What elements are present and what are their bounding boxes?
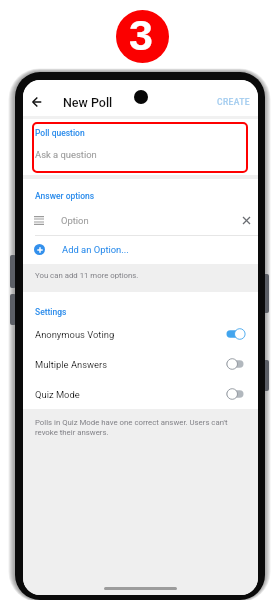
staticText: Option <box>61 215 89 226</box>
staticText: Anonymous Voting <box>35 329 115 340</box>
staticText: 3 <box>129 11 153 59</box>
button[interactable]: Back <box>23 88 51 116</box>
button[interactable]: CREATE <box>209 88 258 116</box>
button[interactable]: Off <box>226 387 246 401</box>
staticText: Answer options <box>35 191 95 201</box>
button[interactable]: Off <box>226 357 246 371</box>
staticText: Poll question <box>35 128 85 138</box>
button[interactable]: Poll question <box>23 119 258 175</box>
staticText: Settings <box>35 307 67 317</box>
button[interactable]: Anonymous Voting <box>23 319 258 349</box>
staticText: Multiple Answers <box>35 359 108 370</box>
button[interactable]: Quiz Mode <box>23 379 258 409</box>
staticText: CREATE <box>217 97 250 107</box>
staticText: Ask a question <box>35 149 97 160</box>
button[interactable]: Option <box>23 208 258 235</box>
staticText: Polls in Quiz Mode have one correct answ… <box>35 418 228 437</box>
staticText: You can add 11 more options. <box>35 271 139 280</box>
staticText: Add an Option... <box>62 244 129 255</box>
button[interactable]: Remove option <box>234 208 258 233</box>
button[interactable]: Add an Option... <box>23 236 258 264</box>
staticText: New Poll <box>63 95 113 110</box>
button[interactable]: On <box>226 327 246 341</box>
button[interactable]: Multiple Answers <box>23 349 258 379</box>
staticText: Quiz Mode <box>35 389 80 400</box>
